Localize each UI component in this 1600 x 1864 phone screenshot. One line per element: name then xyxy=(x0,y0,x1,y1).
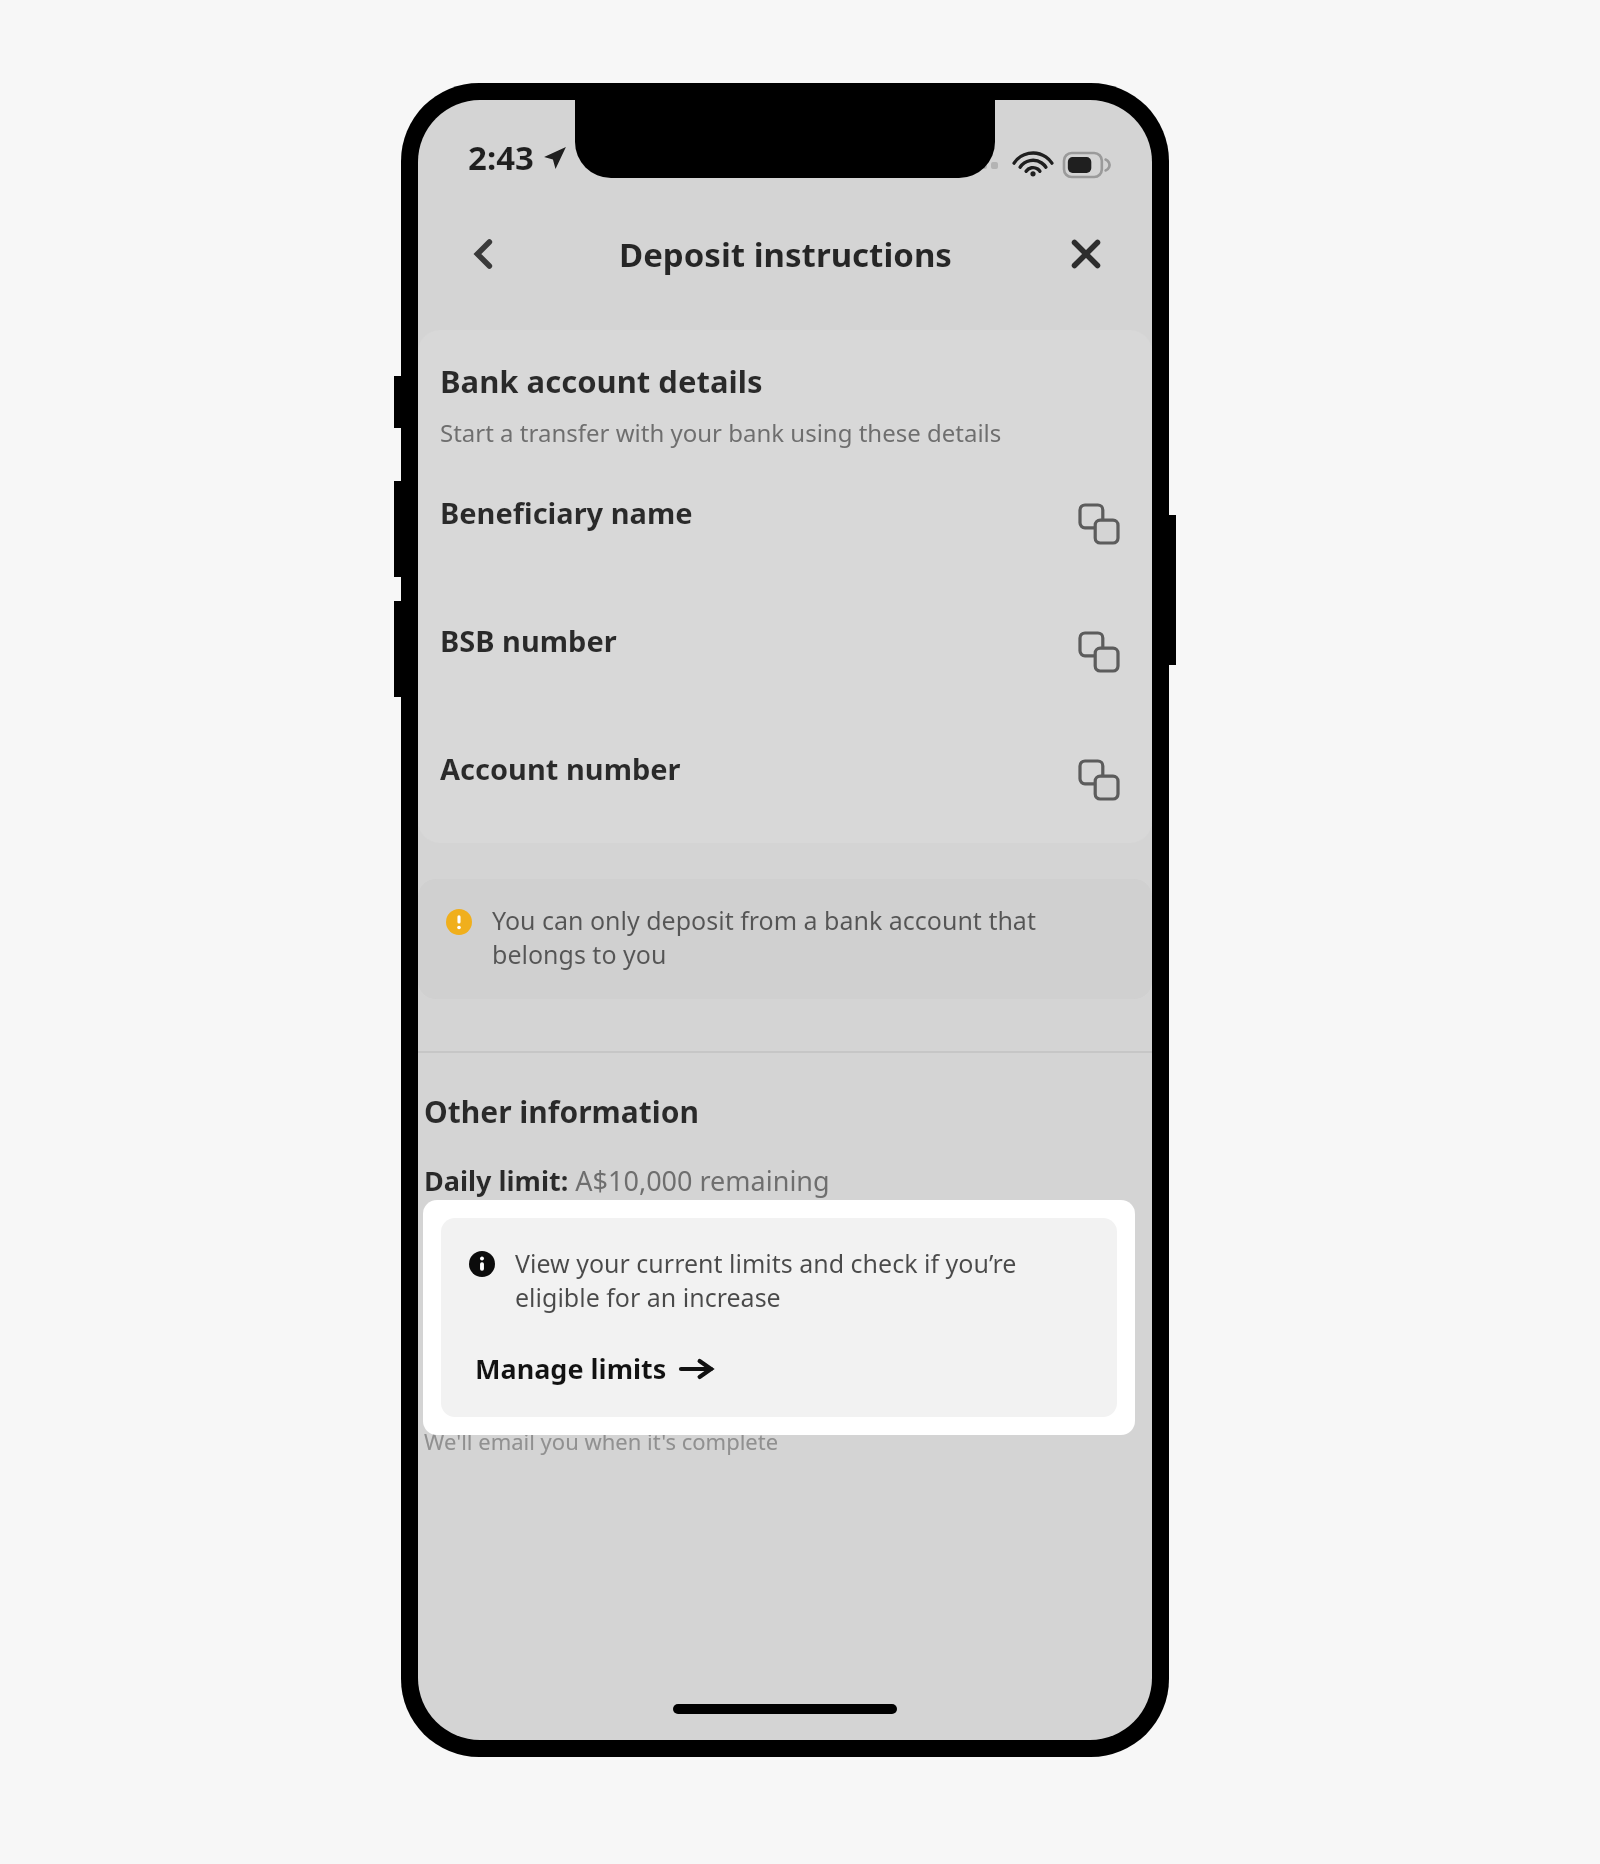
staticText: 2:43 xyxy=(468,135,534,180)
button[interactable]: Copy Beneficiary name xyxy=(1064,489,1134,559)
staticText: Processing time: Up to one business day xyxy=(424,1385,949,1422)
staticText: You can only deposit from a bank account… xyxy=(492,903,1128,971)
button[interactable]: View your current limits and check if yo… xyxy=(441,1218,1117,1417)
staticText: Bank account details xyxy=(440,360,763,402)
button[interactable]: Copy Account number xyxy=(1064,745,1134,815)
button[interactable]: Close xyxy=(1054,222,1118,286)
staticText: Other information xyxy=(424,1091,700,1132)
button[interactable]: Copy BSB number xyxy=(1064,617,1134,687)
staticText: Daily limit: A$10,000 remaining xyxy=(424,1162,830,1199)
staticText: Start a transfer with your bank using th… xyxy=(440,416,1002,449)
staticText: Account number xyxy=(440,749,681,788)
staticText: BSB number xyxy=(440,621,617,660)
staticText: Manage limits xyxy=(475,1350,667,1387)
staticText: We'll email you when it's complete xyxy=(424,1426,779,1456)
staticText: View your current limits and check if yo… xyxy=(515,1246,1093,1314)
staticText: Beneficiary name xyxy=(440,493,693,532)
staticText: Deposit instructions xyxy=(619,232,952,277)
button[interactable]: Manage limits xyxy=(475,1350,711,1387)
button[interactable]: Back xyxy=(452,222,516,286)
